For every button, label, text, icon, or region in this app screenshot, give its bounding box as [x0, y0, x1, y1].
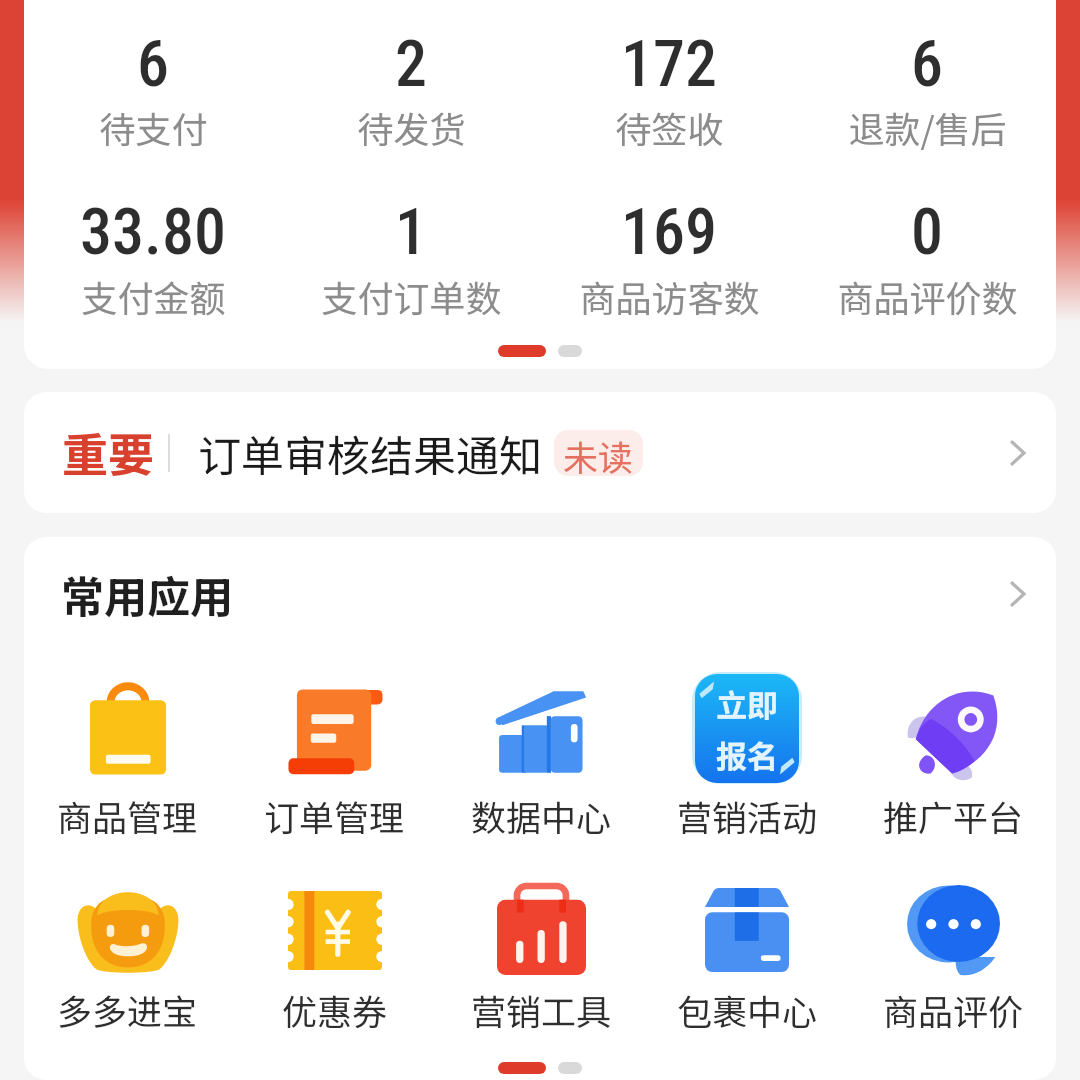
staticText: 商品访客数: [579, 270, 760, 322]
button[interactable]: 重要: [24, 392, 1056, 513]
button[interactable]: [24, 668, 231, 788]
staticText: 待签收: [615, 101, 724, 153]
staticText: 未读: [563, 430, 634, 476]
button[interactable]: [850, 870, 1056, 990]
button[interactable]: 0: [798, 195, 1056, 255]
staticText: 支付订单数: [321, 270, 502, 322]
staticText: 1: [395, 195, 427, 255]
staticText: 支付金额: [81, 270, 226, 322]
staticText: 多多进宝: [57, 984, 198, 1035]
button[interactable]: 2: [282, 27, 540, 87]
button[interactable]: [438, 668, 644, 788]
staticText: 33.80: [80, 195, 226, 255]
button[interactable]: 1: [282, 195, 540, 255]
button[interactable]: 6: [24, 27, 282, 87]
staticText: 退款/售后: [848, 101, 1007, 153]
button[interactable]: [231, 668, 438, 788]
button[interactable]: 立即: [644, 668, 850, 788]
staticText: 数据中心: [471, 790, 612, 841]
staticText: 包裹中心: [677, 984, 818, 1035]
button[interactable]: 常用应用: [24, 538, 1056, 650]
staticText: 立即: [716, 681, 778, 726]
staticText: 营销工具: [471, 984, 612, 1035]
staticText: 推广平台: [883, 790, 1024, 841]
staticText: 0: [911, 195, 943, 255]
button[interactable]: [24, 870, 231, 990]
button[interactable]: [231, 870, 438, 990]
staticText: 169: [621, 195, 717, 255]
staticText: 商品评价数: [837, 270, 1018, 322]
staticText: 订单管理: [264, 790, 405, 841]
staticText: 优惠券: [282, 984, 388, 1035]
button[interactable]: [438, 870, 644, 990]
staticText: 常用应用: [61, 563, 233, 625]
staticText: 重要: [62, 419, 154, 486]
staticText: 营销活动: [677, 790, 818, 841]
button[interactable]: [644, 870, 850, 990]
staticText: 6: [137, 27, 169, 87]
button[interactable]: [850, 668, 1056, 788]
staticText: 订单审核结果通知: [198, 422, 542, 484]
button[interactable]: 172: [540, 27, 798, 87]
staticText: 商品管理: [57, 790, 198, 841]
staticText: 商品评价: [883, 984, 1024, 1035]
button[interactable]: 33.80: [24, 195, 282, 255]
staticText: 报名: [716, 732, 778, 777]
button[interactable]: 169: [540, 195, 798, 255]
staticText: 待支付: [99, 101, 208, 153]
staticText: 待发货: [357, 101, 466, 153]
staticText: 172: [621, 27, 717, 87]
button[interactable]: 6: [798, 27, 1056, 87]
staticText: 2: [395, 27, 427, 87]
staticText: 6: [911, 27, 943, 87]
